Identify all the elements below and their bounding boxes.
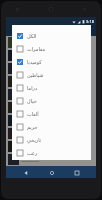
staticText: حريم [27,124,38,130]
other: Checked [17,33,23,39]
button[interactable]: Checked [12,29,91,42]
button[interactable]: Unchecked [12,68,91,81]
button[interactable]: Unchecked [12,107,91,120]
button[interactable]: Unchecked [12,81,91,94]
other: Unchecked [17,72,23,78]
button[interactable]: Home [46,167,57,178]
other: Unchecked [17,150,23,156]
staticText: الكل [27,33,37,39]
other: Unchecked [17,46,23,52]
staticText: خيال [27,98,37,104]
staticText: رعب [27,150,38,156]
button[interactable]: Checked [12,55,91,68]
staticText: دراما [27,85,38,91]
other: Unchecked [17,85,23,91]
button[interactable]: Unchecked [12,94,91,107]
staticText: كوميديا [27,59,42,65]
button[interactable]: Recent apps [71,167,82,178]
staticText: مغامرات [27,46,46,52]
staticText: 3:18 [86,19,94,24]
button[interactable]: Unchecked [12,146,91,159]
other: Unchecked [17,124,23,130]
staticText: شياطين [27,72,44,78]
staticText: تاريخي [27,137,42,143]
button[interactable]: Unchecked [12,120,91,133]
other: Unchecked [17,111,23,117]
staticText: ألعاب [27,111,39,117]
other: Unchecked [17,137,23,143]
other: Checked [17,59,23,65]
other: Unchecked [17,98,23,104]
button[interactable]: Back [20,167,31,178]
button[interactable]: Unchecked [12,42,91,55]
button[interactable]: Unchecked [12,133,91,146]
